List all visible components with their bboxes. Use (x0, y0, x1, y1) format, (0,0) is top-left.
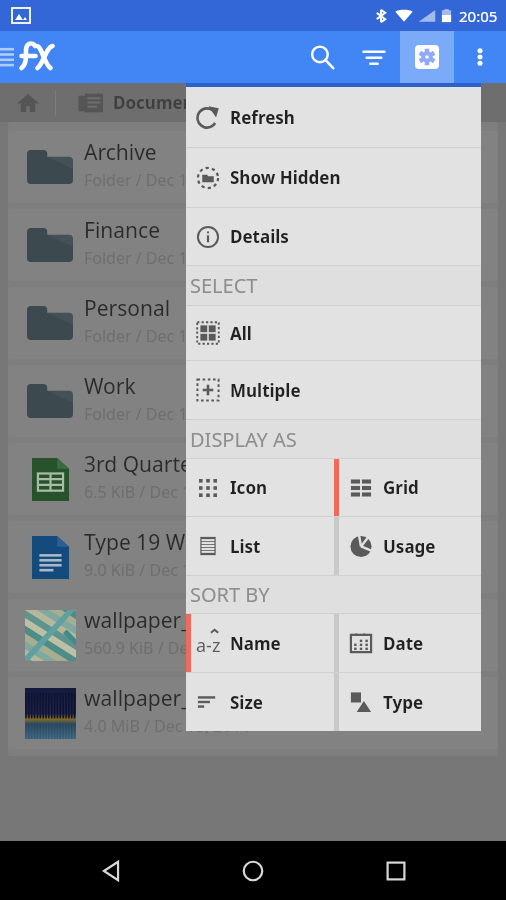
staticText: Size (230, 691, 263, 714)
staticText: wallpaper_2 (84, 684, 203, 713)
button[interactable]: Finance (8, 209, 498, 281)
staticText: Type 19 Wi (84, 528, 191, 557)
staticText: Documents (113, 91, 210, 114)
staticText: Finance (84, 216, 160, 245)
button[interactable]: Multiple (186, 361, 481, 419)
staticText: Grid (383, 476, 419, 499)
button[interactable]: Size (186, 673, 334, 731)
staticText: 560.9 KiB / Dec 15, 2014 (84, 637, 264, 659)
button[interactable]: Usage (339, 517, 481, 575)
button[interactable]: Date (339, 614, 481, 672)
button[interactable]: List (186, 517, 334, 575)
button[interactable]: All (186, 306, 481, 360)
button[interactable]: Show Hidden (186, 148, 481, 207)
staticText: 9.0 KiB / Dec 15, 2014 (84, 559, 246, 581)
button[interactable]: Search (296, 31, 348, 83)
staticText: Folder / Dec 15, 2014 (84, 325, 242, 347)
button[interactable]: Back (79, 841, 143, 900)
staticText: Folder / Dec 15, 2014 (84, 403, 242, 425)
button[interactable]: a-z (186, 614, 334, 672)
button[interactable]: Settings (400, 31, 454, 83)
staticText: Folder / Dec 15, 2014 (84, 169, 242, 191)
button[interactable]: Details (186, 208, 481, 265)
button[interactable]: Type (339, 673, 481, 731)
staticText: List (230, 535, 261, 558)
staticText: wallpaper_1 (84, 606, 203, 635)
button[interactable]: wallpaper_2 (8, 677, 498, 749)
button[interactable]: Menu (0, 31, 118, 83)
staticText: DISPLAY AS (190, 426, 297, 453)
staticText: 3rd Quarter (84, 450, 201, 479)
staticText: Work (84, 372, 136, 401)
staticText: a-z (196, 633, 221, 658)
button[interactable]: Filter (348, 31, 400, 83)
staticText: SELECT (190, 272, 258, 299)
button[interactable]: Icon (186, 459, 334, 516)
button[interactable]: Home (221, 841, 285, 900)
button[interactable]: Documents (78, 83, 210, 122)
button[interactable]: Archive (8, 131, 498, 203)
staticText: Show Hidden (230, 166, 341, 189)
staticText: All (230, 322, 252, 345)
button[interactable]: 3rd Quarter (8, 443, 498, 515)
staticText: Name (230, 632, 281, 655)
staticText: Usage (383, 535, 436, 558)
button[interactable]: Grid (339, 459, 481, 516)
staticText: Type (383, 691, 424, 714)
button[interactable]: Type 19 Wi (8, 521, 498, 593)
button[interactable]: wallpaper_1 (8, 599, 498, 671)
staticText: Folder / Dec 15, 2014 (84, 247, 242, 269)
staticText: Multiple (230, 379, 301, 402)
staticText: Date (383, 632, 424, 655)
button[interactable]: Work (8, 365, 498, 437)
staticText: SORT BY (190, 581, 270, 608)
button[interactable]: Home (0, 83, 55, 122)
staticText: 6.5 KiB / Dec 15, 2014 (84, 481, 246, 503)
staticText: Refresh (230, 106, 295, 129)
button[interactable]: Personal (8, 287, 498, 359)
staticText: Icon (230, 476, 268, 499)
button[interactable]: Refresh (186, 87, 481, 147)
button[interactable]: More options (454, 31, 506, 83)
button[interactable]: Recents (364, 841, 428, 900)
staticText: Personal (84, 294, 171, 323)
staticText: 4.0 MiB / Dec 15, 2014 (84, 715, 250, 737)
staticText: 20:05 (459, 6, 498, 26)
staticText: Details (230, 225, 289, 248)
staticText: Archive (84, 138, 157, 167)
